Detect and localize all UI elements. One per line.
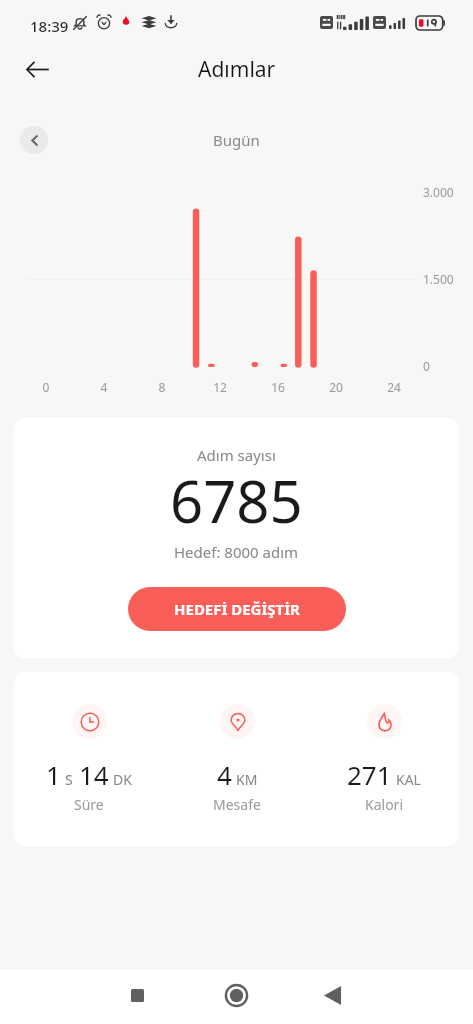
staticText: 0 xyxy=(34,379,58,395)
staticText: KAL xyxy=(396,770,421,789)
button[interactable]: HEDEFİ DEĞİŞTİR xyxy=(128,587,346,631)
button[interactable]: Back xyxy=(312,975,352,1015)
staticText: S xyxy=(65,770,73,789)
staticText: Kalori xyxy=(365,795,403,814)
button[interactable]: Previous day xyxy=(20,126,48,154)
staticText: 3.000 xyxy=(423,184,454,200)
staticText: 14 xyxy=(79,757,109,792)
staticText: Hedef: 8000 adım xyxy=(174,542,299,562)
staticText: 4 xyxy=(92,379,116,395)
staticText: 271 xyxy=(347,757,392,792)
button[interactable]: 271 xyxy=(319,672,449,846)
staticText: 1.500 xyxy=(423,271,454,287)
button[interactable]: 1 xyxy=(24,672,154,846)
staticText: 0 xyxy=(423,358,430,374)
staticText: 16 xyxy=(266,379,290,395)
button[interactable]: Back xyxy=(15,47,59,91)
staticText: Adım sayısı xyxy=(197,445,276,465)
staticText: 8 xyxy=(150,379,174,395)
staticText: 20 xyxy=(324,379,348,395)
button[interactable]: 4 xyxy=(172,672,302,846)
staticText: 18:39 xyxy=(30,16,69,36)
staticText: 4 xyxy=(217,757,232,792)
staticText: Bugün xyxy=(213,130,260,150)
staticText: HEDEFİ DEĞİŞTİR xyxy=(174,599,300,619)
staticText: KM xyxy=(236,770,258,789)
staticText: DK xyxy=(113,770,132,789)
button[interactable]: Recent apps xyxy=(117,975,157,1015)
staticText: 1 xyxy=(46,757,61,792)
staticText: 12 xyxy=(208,379,232,395)
staticText: 24 xyxy=(382,379,406,395)
staticText: Süre xyxy=(74,795,104,814)
staticText: 6785 xyxy=(170,461,303,540)
staticText: Adımlar xyxy=(198,55,276,84)
button[interactable]: Home xyxy=(216,975,256,1015)
staticText: Mesafe xyxy=(213,795,261,814)
